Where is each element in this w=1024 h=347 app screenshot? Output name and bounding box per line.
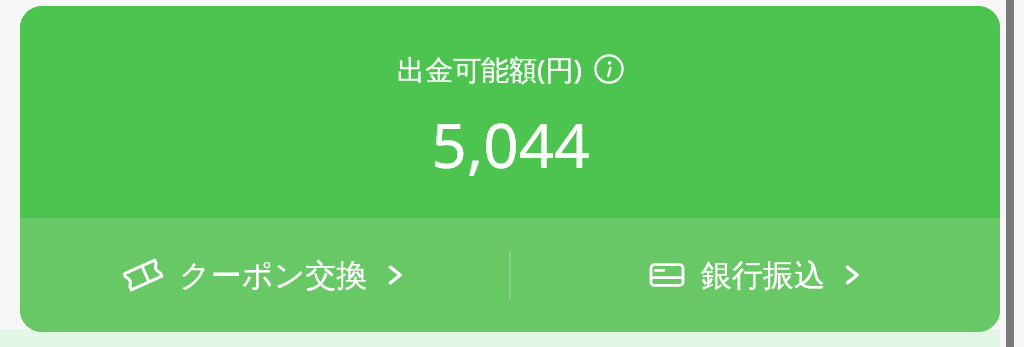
other: 情報 xyxy=(594,54,624,84)
staticText: 出金可能額(円) xyxy=(397,50,582,88)
staticText: 5,044 xyxy=(431,102,590,186)
staticText: 銀行振込 xyxy=(701,256,825,295)
staticText: クーポン交換 xyxy=(179,256,368,295)
button[interactable]: クーポン交換 xyxy=(20,218,509,332)
button[interactable]: 出金可能額(円) xyxy=(397,50,624,88)
button[interactable]: 銀行振込 xyxy=(511,218,1000,332)
